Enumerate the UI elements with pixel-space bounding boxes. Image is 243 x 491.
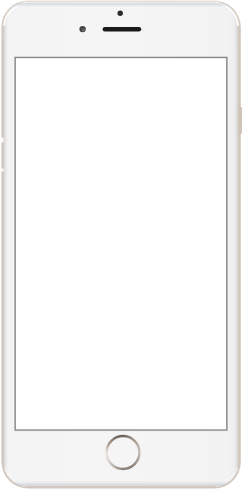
button[interactable]: Volume down — [0, 171, 6, 198]
button[interactable]: Volume up — [0, 142, 6, 169]
button[interactable]: Home — [106, 435, 141, 470]
button[interactable]: Power — [236, 105, 243, 136]
